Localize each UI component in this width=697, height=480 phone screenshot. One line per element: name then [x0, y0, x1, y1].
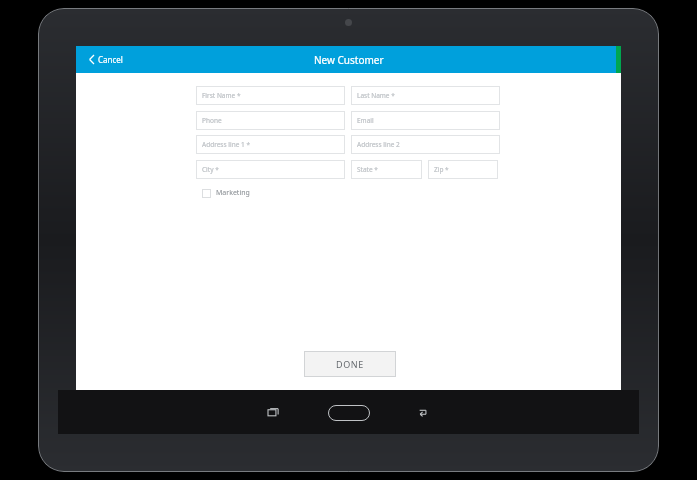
button[interactable]: Recent apps	[263, 402, 283, 422]
button[interactable]: DONE	[304, 351, 396, 377]
staticText: Last Name *	[357, 91, 395, 100]
button[interactable]: Address line 1 *	[196, 135, 345, 154]
button[interactable]: Zip *	[428, 160, 498, 179]
button[interactable]: Back	[413, 402, 433, 422]
staticText: First Name *	[202, 91, 241, 100]
button[interactable]: Last Name *	[351, 86, 500, 105]
button[interactable]: First Name *	[196, 86, 345, 105]
button[interactable]: State *	[351, 160, 422, 179]
staticText: Address line 1 *	[202, 140, 251, 149]
button[interactable]: Home	[326, 402, 372, 424]
staticText: Marketing	[216, 188, 250, 198]
button[interactable]: City *	[196, 160, 345, 179]
button[interactable]: Cancel	[76, 46, 133, 73]
staticText: Phone	[202, 116, 222, 125]
button[interactable]: Phone	[196, 111, 345, 130]
staticText: State *	[357, 165, 378, 174]
staticText: Email	[357, 116, 374, 125]
button[interactable]: Email	[351, 111, 500, 130]
button[interactable]: Address line 2	[351, 135, 500, 154]
staticText: City *	[202, 165, 219, 174]
button[interactable]: Marketing	[201, 186, 251, 200]
staticText: New Customer	[314, 53, 384, 67]
staticText: Zip *	[434, 165, 449, 174]
staticText: Cancel	[98, 54, 123, 65]
staticText: Address line 2	[357, 140, 400, 149]
staticText: DONE	[336, 358, 364, 370]
